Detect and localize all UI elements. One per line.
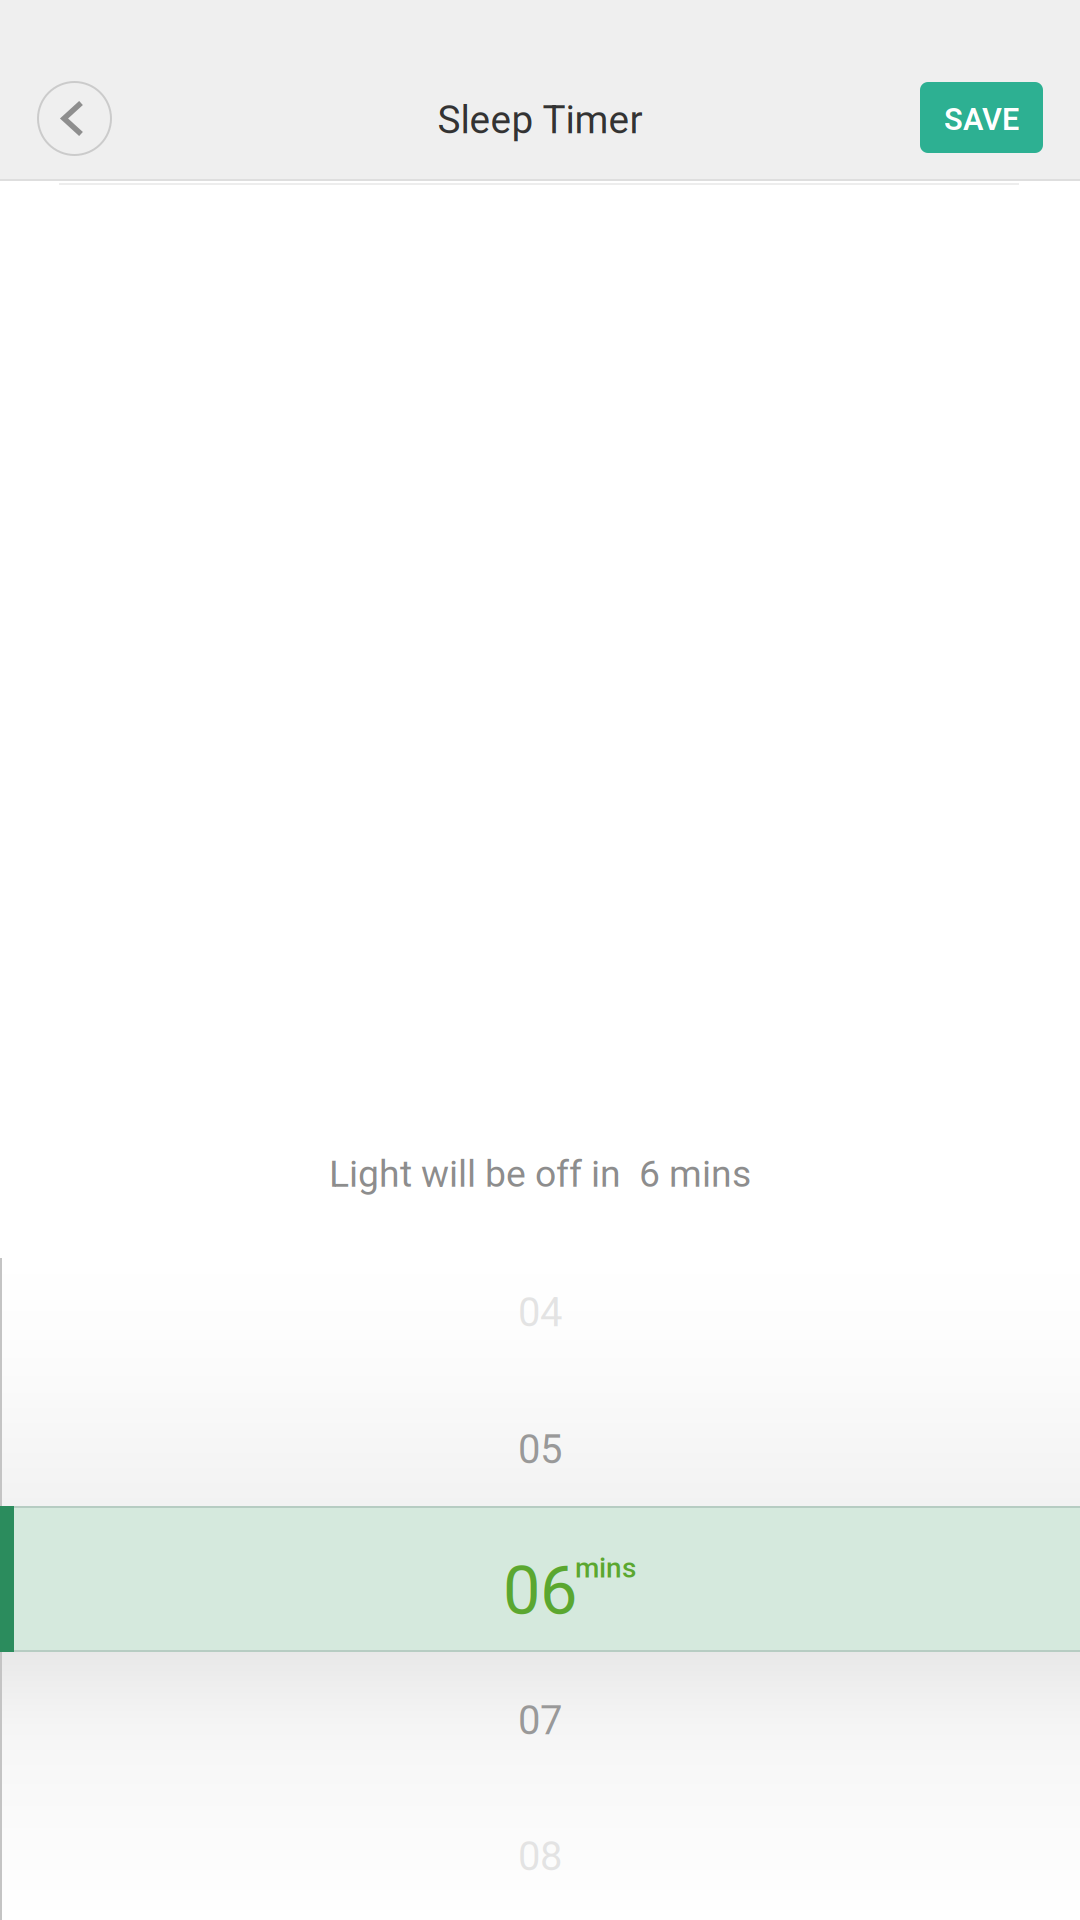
staticText: 04	[518, 1289, 562, 1336]
button[interactable]: 07	[0, 1651, 1080, 1787]
button[interactable]: SAVE	[920, 82, 1043, 153]
staticText: mins	[575, 1552, 636, 1584]
staticText: Light will be off in 6 mins	[329, 1152, 751, 1196]
staticText: 08	[518, 1833, 562, 1880]
button[interactable]: 06	[0, 1506, 1080, 1652]
button[interactable]: Back	[12, 56, 137, 181]
button[interactable]: 08	[0, 1787, 1080, 1920]
staticText: 07	[518, 1697, 562, 1744]
staticText: Sleep Timer	[437, 97, 642, 143]
button[interactable]: 04	[0, 1243, 1080, 1379]
button[interactable]: 05	[0, 1380, 1080, 1516]
staticText: SAVE	[944, 101, 1019, 137]
staticText: 05	[518, 1426, 562, 1473]
staticText: 06	[503, 1552, 577, 1630]
